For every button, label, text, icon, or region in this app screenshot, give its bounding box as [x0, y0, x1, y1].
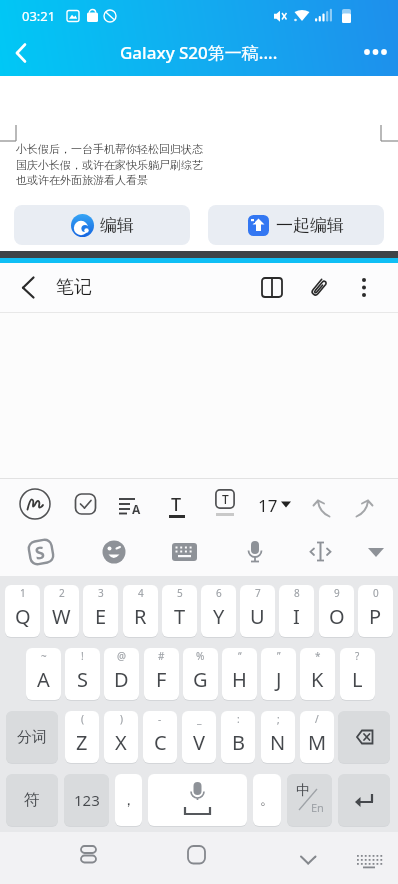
- button[interactable]: 。: [253, 774, 281, 826]
- button[interactable]: [148, 774, 247, 826]
- staticText: K: [311, 666, 324, 693]
- button[interactable]: “: [222, 648, 257, 700]
- staticText: L: [352, 666, 363, 693]
- button[interactable]: [66, 838, 106, 878]
- button[interactable]: 7: [240, 585, 275, 637]
- staticText: %: [196, 649, 205, 663]
- staticText: G: [193, 666, 208, 693]
- button[interactable]: 1: [5, 585, 40, 637]
- button[interactable]: [283, 838, 323, 878]
- button[interactable]: [210, 489, 240, 519]
- button[interactable]: ，: [115, 774, 142, 826]
- button[interactable]: [338, 711, 390, 763]
- button[interactable]: [27, 537, 59, 569]
- staticText: I: [293, 603, 300, 630]
- button[interactable]: 中: [287, 774, 332, 826]
- staticText: Galaxy S20第一稿....: [120, 41, 278, 64]
- button[interactable]: [312, 489, 342, 519]
- staticText: 一起编辑: [276, 215, 344, 236]
- button[interactable]: 0: [358, 585, 393, 637]
- button[interactable]: @: [104, 648, 139, 700]
- button[interactable]: %: [183, 648, 218, 700]
- staticText: :: [237, 712, 240, 726]
- staticText: ?: [355, 649, 360, 663]
- button[interactable]: #: [144, 648, 179, 700]
- button[interactable]: [351, 489, 381, 519]
- button[interactable]: [168, 537, 200, 569]
- button[interactable]: ”: [261, 648, 296, 700]
- button[interactable]: [70, 489, 100, 519]
- staticText: -: [158, 712, 162, 726]
- button[interactable]: ): [104, 711, 138, 763]
- staticText: #: [158, 649, 165, 663]
- staticText: W: [52, 603, 71, 630]
- button[interactable]: 一起编辑: [208, 205, 384, 245]
- button[interactable]: [254, 271, 290, 307]
- button[interactable]: [182, 838, 222, 878]
- staticText: _: [197, 712, 202, 726]
- button[interactable]: [99, 537, 131, 569]
- button[interactable]: 9: [319, 585, 354, 637]
- button[interactable]: ?: [340, 648, 375, 700]
- button[interactable]: /: [300, 711, 334, 763]
- staticText: V: [193, 729, 205, 756]
- button[interactable]: [338, 774, 390, 826]
- button[interactable]: [6, 37, 40, 71]
- button[interactable]: 6: [201, 585, 236, 637]
- staticText: Z: [76, 729, 88, 756]
- staticText: T: [222, 491, 229, 507]
- button[interactable]: _: [182, 711, 216, 763]
- button[interactable]: [115, 489, 145, 519]
- button[interactable]: [12, 271, 44, 303]
- button[interactable]: !: [65, 648, 100, 700]
- button[interactable]: [348, 271, 380, 303]
- staticText: 也或许在外面旅游看人看景: [16, 173, 148, 187]
- button[interactable]: 4: [123, 585, 158, 637]
- button[interactable]: [350, 838, 390, 878]
- staticText: Y: [213, 603, 225, 630]
- staticText: 2: [59, 586, 65, 600]
- button[interactable]: (: [65, 711, 99, 763]
- staticText: D: [114, 666, 129, 693]
- staticText: /: [315, 712, 319, 726]
- staticText: 123: [74, 790, 100, 810]
- staticText: ;: [277, 712, 280, 726]
- button[interactable]: :: [221, 711, 255, 763]
- button[interactable]: [305, 537, 337, 569]
- button[interactable]: -: [143, 711, 177, 763]
- staticText: J: [276, 666, 282, 693]
- staticText: 1: [20, 586, 26, 600]
- button[interactable]: 编辑: [14, 205, 190, 245]
- button[interactable]: ;: [261, 711, 295, 763]
- staticText: ”: [277, 649, 281, 663]
- staticText: @: [117, 649, 126, 663]
- staticText: E: [95, 603, 107, 630]
- button[interactable]: 分词: [6, 711, 58, 763]
- button[interactable]: *: [300, 648, 335, 700]
- staticText: S: [33, 540, 47, 565]
- button[interactable]: [20, 489, 50, 519]
- button[interactable]: [162, 489, 192, 519]
- staticText: N: [270, 729, 286, 756]
- button[interactable]: 3: [83, 585, 118, 637]
- button[interactable]: 2: [44, 585, 79, 637]
- staticText: 编辑: [100, 215, 134, 236]
- button[interactable]: 5: [162, 585, 197, 637]
- staticText: 笔记: [56, 276, 92, 299]
- staticText: A: [37, 666, 50, 693]
- staticText: En: [311, 800, 324, 815]
- button[interactable]: [360, 537, 392, 569]
- button[interactable]: [255, 489, 293, 519]
- staticText: 17: [258, 494, 278, 517]
- staticText: O: [329, 603, 345, 630]
- button[interactable]: 符: [6, 774, 58, 826]
- button[interactable]: [303, 271, 337, 305]
- staticText: H: [232, 666, 247, 693]
- button[interactable]: [356, 36, 394, 70]
- button[interactable]: ~: [26, 648, 61, 700]
- staticText: 符: [24, 790, 40, 810]
- button[interactable]: 8: [279, 585, 314, 637]
- staticText: X: [115, 729, 127, 756]
- button[interactable]: 123: [64, 774, 109, 826]
- button[interactable]: [239, 537, 271, 569]
